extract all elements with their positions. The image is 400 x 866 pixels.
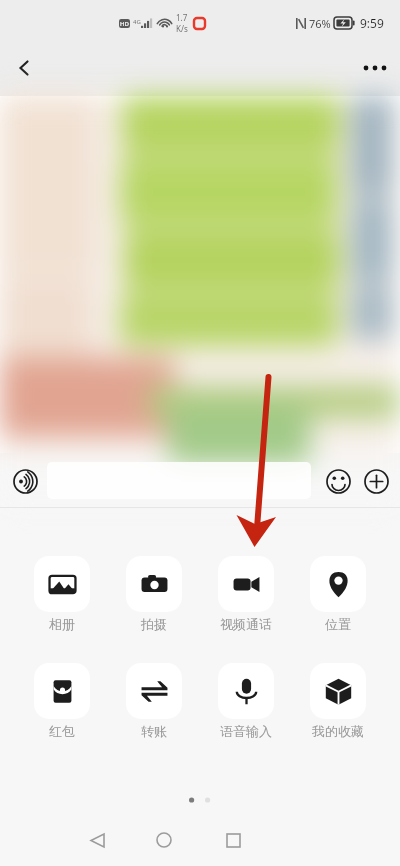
staticText: 1.7 [176, 12, 188, 23]
staticText: HD [120, 20, 129, 28]
button[interactable]: 红包 [34, 663, 90, 739]
staticText: 76% [309, 16, 331, 31]
staticText: 相册 [49, 616, 75, 632]
button[interactable]: More functions [359, 464, 393, 498]
button[interactable]: 语音输入 [218, 663, 274, 739]
staticText: 位置 [325, 616, 351, 632]
button[interactable]: Back [6, 50, 42, 86]
button[interactable]: Voice input [6, 462, 44, 500]
button[interactable]: More options [357, 50, 393, 86]
button[interactable]: 拍摄 [126, 556, 182, 632]
staticText: 拍摄 [141, 616, 167, 632]
button[interactable] [47, 462, 311, 499]
staticText: 4G [133, 18, 141, 26]
button[interactable]: 转账 [126, 663, 182, 739]
button[interactable]: 视频通话 [218, 556, 274, 632]
button[interactable]: 我的收藏 [310, 663, 366, 739]
staticText: 红包 [49, 723, 75, 739]
staticText: 9:59 [360, 15, 384, 31]
button[interactable]: 相册 [34, 556, 90, 632]
button[interactable]: Back [77, 820, 117, 860]
staticText: K/s [176, 23, 188, 34]
staticText: 转账 [141, 723, 167, 739]
button[interactable]: Home [144, 820, 184, 860]
button[interactable]: Emoji [321, 464, 355, 498]
button[interactable]: Recents [213, 820, 253, 860]
staticText: 视频通话 [220, 616, 272, 632]
staticText: 我的收藏 [312, 723, 364, 739]
staticText: 语音输入 [220, 723, 272, 739]
button[interactable]: 位置 [310, 556, 366, 632]
